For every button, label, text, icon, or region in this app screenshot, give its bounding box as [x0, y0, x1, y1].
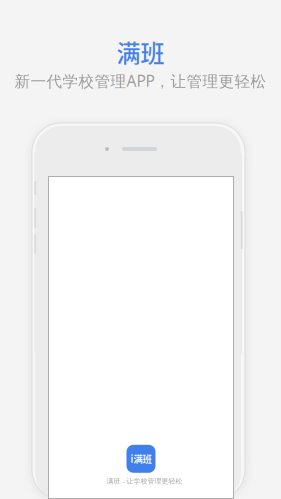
staticText: 满班 - 让学校管理更轻松: [106, 476, 182, 486]
staticText: 满班: [116, 34, 164, 69]
button[interactable]: i满班: [99, 445, 182, 486]
staticText: 新一代学校管理APP，让管理更轻松: [14, 70, 266, 91]
staticText: i满班: [130, 452, 151, 465]
